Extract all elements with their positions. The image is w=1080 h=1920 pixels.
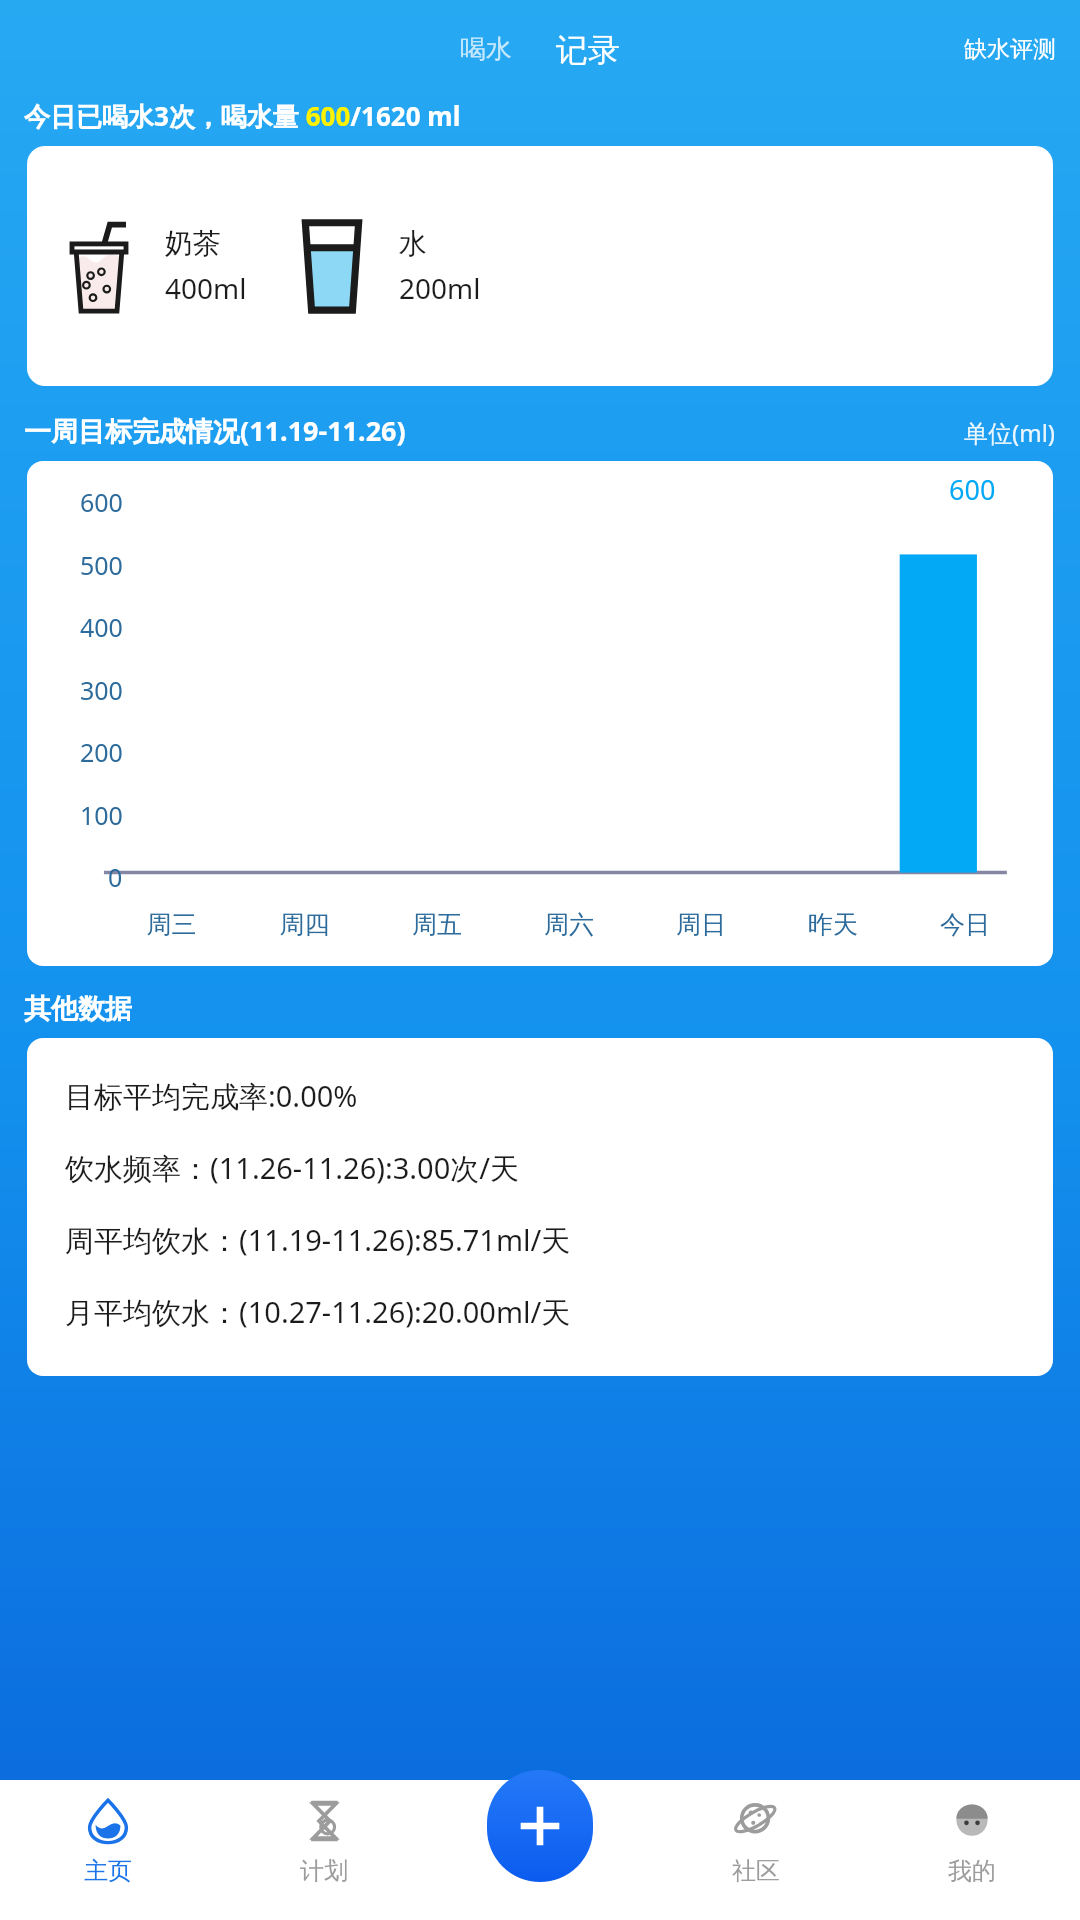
staticText: 今日 — [899, 909, 1031, 940]
staticText: 600 — [80, 485, 123, 519]
button[interactable]: 社区 — [648, 1780, 864, 1920]
staticText: 喝水 — [460, 33, 512, 66]
staticText: 饮水频率：(11.26-11.26):3.00次/天 — [65, 1148, 520, 1188]
staticText: 100 — [80, 798, 123, 832]
staticText: 200ml — [399, 269, 481, 307]
staticText: 计划 — [300, 1856, 348, 1886]
staticText: 缺水评测 — [964, 35, 1056, 64]
button[interactable]: 缺水评测 — [940, 25, 1080, 74]
staticText: 社区 — [732, 1856, 780, 1886]
staticText: 单位(ml) — [964, 416, 1056, 449]
button[interactable]: 我的 — [864, 1780, 1080, 1920]
staticText: 我的 — [948, 1856, 996, 1886]
staticText: 目标平均完成率:0.00% — [65, 1076, 358, 1116]
button[interactable]: 奶茶 — [27, 146, 1053, 386]
staticText: 今日已喝水3次，喝水量 600/1620 ml — [24, 98, 461, 134]
staticText: 其他数据 — [24, 992, 132, 1026]
staticText: 周四 — [238, 909, 371, 940]
staticText: 周五 — [371, 909, 503, 940]
staticText: 400 — [80, 610, 123, 644]
staticText: 500 — [80, 548, 123, 582]
staticText: 400ml — [165, 269, 247, 307]
staticText: 周六 — [503, 909, 635, 940]
staticText: 水 — [399, 226, 427, 261]
staticText: 奶茶 — [165, 226, 221, 261]
staticText: 记录 — [556, 30, 620, 70]
staticText: 周三 — [105, 909, 238, 940]
staticText: 300 — [80, 673, 123, 707]
staticText: 周日 — [635, 909, 767, 940]
button[interactable]: 主页 — [0, 1780, 216, 1920]
staticText: 一周目标完成情况(11.19-11.26) — [24, 412, 406, 449]
staticText: 600 — [949, 471, 996, 508]
button[interactable]: 600 — [27, 461, 1053, 966]
button[interactable]: 目标平均完成率:0.00% — [27, 1038, 1053, 1376]
button[interactable]: Add record — [487, 1770, 593, 1882]
staticText: 0 — [108, 860, 123, 894]
button[interactable]: 记录 — [542, 26, 634, 74]
staticText: 200 — [80, 735, 123, 769]
staticText: 周平均饮水：(11.19-11.26):85.71ml/天 — [65, 1220, 571, 1260]
staticText: 昨天 — [767, 909, 899, 940]
button[interactable]: 计划 — [216, 1780, 432, 1920]
staticText: 月平均饮水：(10.27-11.26):20.00ml/天 — [65, 1292, 571, 1332]
button[interactable]: 喝水 — [446, 25, 526, 74]
staticText: 主页 — [84, 1856, 132, 1886]
